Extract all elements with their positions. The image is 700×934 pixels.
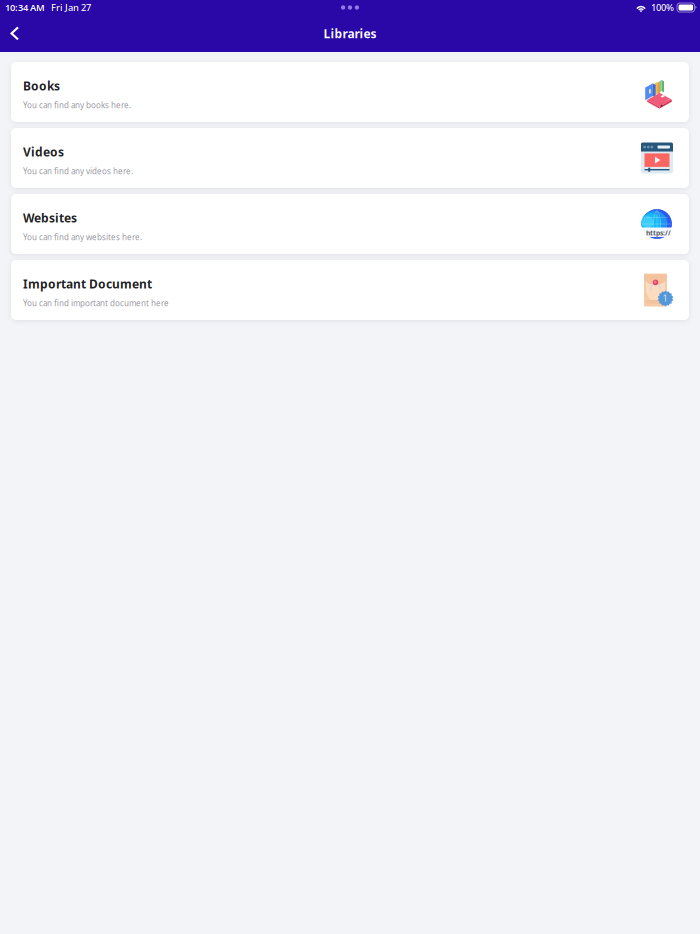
staticText: You can find any books here. (23, 100, 131, 110)
button[interactable]: Books (11, 62, 689, 122)
staticText: Libraries (323, 25, 376, 41)
staticText: 10:34 AM (5, 1, 45, 14)
staticText: https:// (646, 229, 671, 237)
staticText: Fri Jan 27 (45, 1, 91, 14)
button[interactable]: Back (0, 17, 33, 50)
button[interactable]: Important Document (11, 260, 689, 320)
staticText: Important Document (23, 276, 152, 292)
staticText: 100% (647, 1, 674, 14)
button[interactable]: Websites (11, 194, 689, 254)
staticText: 1 (662, 292, 667, 304)
staticText: Books (23, 78, 60, 94)
staticText: You can find any websites here. (23, 232, 142, 242)
staticText: You can find important document here (23, 298, 169, 308)
staticText: Websites (23, 210, 77, 226)
staticText: You can find any videos here. (23, 166, 133, 176)
staticText: Videos (23, 144, 64, 160)
button[interactable]: Videos (11, 128, 689, 188)
